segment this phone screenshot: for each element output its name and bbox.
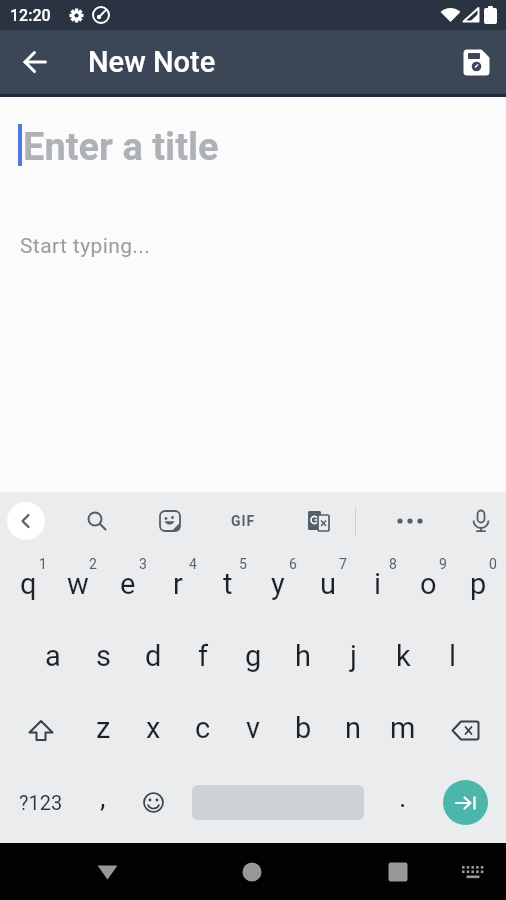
staticText: m: [390, 711, 416, 745]
button[interactable]: c: [178, 694, 228, 766]
staticText: 7: [339, 556, 347, 572]
button[interactable]: [450, 36, 502, 88]
staticText: a: [45, 639, 61, 673]
button[interactable]: m: [378, 694, 428, 766]
button[interactable]: z: [78, 694, 128, 766]
button[interactable]: y: [253, 550, 303, 622]
button[interactable]: [148, 499, 192, 543]
button[interactable]: t: [203, 550, 253, 622]
staticText: 4: [189, 556, 197, 572]
staticText: 9: [439, 556, 447, 572]
button[interactable]: ?123: [3, 766, 78, 838]
staticText: u: [320, 567, 336, 601]
staticText: p: [470, 567, 487, 601]
staticText: 1: [39, 556, 47, 572]
staticText: 3: [139, 556, 147, 572]
staticText: 0: [489, 556, 497, 572]
button[interactable]: d: [128, 622, 178, 694]
staticText: g: [245, 639, 262, 673]
button[interactable]: [75, 499, 119, 543]
staticText: q: [20, 567, 37, 601]
staticText: b: [295, 711, 312, 745]
staticText: Start typing...: [20, 234, 151, 259]
button[interactable]: [128, 766, 178, 838]
button[interactable]: [3, 694, 78, 766]
staticText: v: [246, 711, 261, 745]
staticText: z: [96, 711, 111, 745]
staticText: ?123: [19, 791, 63, 814]
staticText: h: [295, 639, 311, 673]
button[interactable]: b: [278, 694, 328, 766]
staticText: 12:20: [10, 6, 51, 25]
button[interactable]: e: [103, 550, 153, 622]
button[interactable]: p: [453, 550, 503, 622]
button[interactable]: x: [128, 694, 178, 766]
button[interactable]: v: [228, 694, 278, 766]
button[interactable]: a: [28, 622, 78, 694]
staticText: j: [350, 639, 357, 673]
staticText: .: [399, 781, 407, 814]
button[interactable]: j: [328, 622, 378, 694]
button[interactable]: w: [53, 550, 103, 622]
button[interactable]: Enter a title: [0, 97, 506, 492]
staticText: 2: [89, 556, 97, 572]
button[interactable]: g: [228, 622, 278, 694]
button[interactable]: [374, 848, 422, 896]
button[interactable]: [296, 499, 340, 543]
staticText: ,: [100, 781, 106, 814]
staticText: l: [449, 639, 457, 673]
button[interactable]: [449, 848, 497, 896]
button[interactable]: n: [328, 694, 378, 766]
staticText: Enter a title: [23, 125, 219, 170]
staticText: New Note: [88, 45, 216, 79]
staticText: d: [145, 639, 162, 673]
staticText: e: [120, 567, 136, 601]
button[interactable]: ,: [78, 766, 128, 838]
staticText: y: [271, 567, 285, 601]
button[interactable]: r: [153, 550, 203, 622]
button[interactable]: .: [378, 766, 428, 838]
button[interactable]: l: [428, 622, 478, 694]
staticText: x: [146, 711, 161, 745]
button[interactable]: [388, 499, 432, 543]
button[interactable]: [228, 848, 276, 896]
staticText: s: [96, 639, 111, 673]
button[interactable]: [428, 694, 503, 766]
button[interactable]: q: [3, 550, 53, 622]
button[interactable]: [443, 780, 488, 825]
button[interactable]: [9, 36, 61, 88]
staticText: n: [345, 711, 362, 745]
staticText: 8: [389, 556, 397, 572]
staticText: GIF: [231, 513, 256, 529]
button[interactable]: GIF: [221, 499, 265, 543]
button[interactable]: u: [303, 550, 353, 622]
staticText: r: [173, 567, 183, 601]
staticText: 6: [289, 556, 297, 572]
button[interactable]: f: [178, 622, 228, 694]
staticText: t: [223, 567, 233, 601]
staticText: k: [396, 639, 411, 673]
button[interactable]: [459, 499, 503, 543]
staticText: i: [374, 567, 382, 601]
button[interactable]: [7, 502, 45, 540]
button[interactable]: h: [278, 622, 328, 694]
staticText: o: [420, 567, 437, 601]
button[interactable]: s: [78, 622, 128, 694]
staticText: f: [198, 639, 209, 673]
button[interactable]: o: [403, 550, 453, 622]
staticText: w: [67, 567, 89, 601]
button[interactable]: k: [378, 622, 428, 694]
staticText: c: [195, 711, 211, 745]
button[interactable]: i: [353, 550, 403, 622]
button[interactable]: [83, 848, 131, 896]
staticText: 5: [239, 556, 247, 572]
